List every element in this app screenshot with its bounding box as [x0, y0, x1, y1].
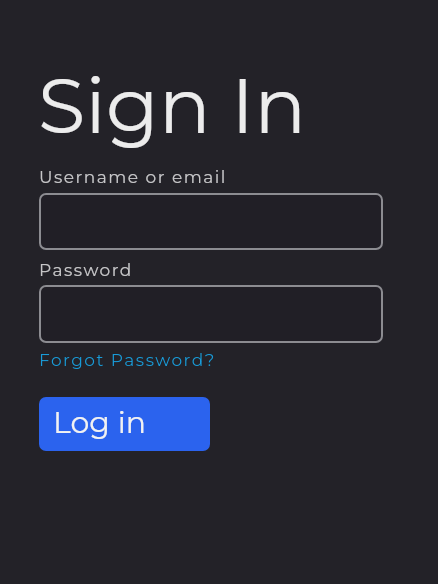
staticText: Log in [53, 404, 147, 441]
button[interactable] [39, 193, 383, 250]
button[interactable]: Forgot Password? [39, 350, 216, 371]
staticText: Username or email [39, 167, 227, 188]
staticText: Password [39, 260, 133, 281]
staticText: Sign In [38, 58, 307, 152]
button[interactable] [39, 285, 383, 343]
button[interactable]: Log in [39, 397, 210, 451]
